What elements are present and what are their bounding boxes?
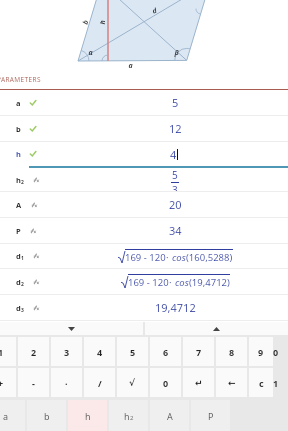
button[interactable]: Expand [145,322,288,335]
button[interactable]: ↵ [183,368,214,397]
staticText: c [259,377,264,389]
button[interactable]: P [0,218,288,244]
staticText: 3 [21,307,24,314]
staticText: (160,5288) [186,251,233,264]
staticText: b [44,410,50,422]
staticText: PARAMETERS [0,75,41,84]
button[interactable]: P [191,400,230,431]
other: Formula [33,279,39,285]
button[interactable]: 2 [18,337,49,366]
button[interactable]: 8 [216,337,247,366]
other: Valid [30,126,36,132]
staticText: · [169,276,175,289]
other: Formula [33,253,39,259]
staticText: P [16,226,21,236]
staticText: d [16,251,21,261]
staticText: 1 [21,255,24,262]
staticText: 6 [163,346,169,358]
other: Formula [33,177,39,183]
button[interactable]: c [249,368,273,397]
staticText: 7 [196,346,202,358]
staticText: cos [175,276,189,289]
button[interactable]: 3 [51,337,82,366]
staticText: 19,4712 [155,300,196,315]
button[interactable]: d [0,244,288,269]
button[interactable]: 0 [150,368,181,397]
button[interactable]: · [51,368,82,397]
button[interactable]: 7 [183,337,214,366]
button[interactable]: 5 [117,337,148,366]
button[interactable]: h [0,142,288,168]
button[interactable]: h [0,168,288,192]
staticText: 169 - 120 [125,251,166,264]
staticText: h [16,175,21,185]
staticText: 8 [229,346,235,358]
staticText: 2 [21,281,24,288]
other: Valid [30,100,36,106]
staticText: h [85,410,91,422]
staticText: √ [129,378,136,388]
staticText: h [16,149,21,159]
staticText: + [0,377,4,389]
other: Valid [30,151,36,157]
staticText: d [16,303,21,313]
staticText: a [3,410,9,422]
staticText: 4 [170,147,177,162]
button[interactable]: b [27,400,66,431]
staticText: cos [172,251,186,264]
button[interactable]: 9 [249,337,273,366]
staticText: 9 [258,346,264,358]
staticText: 12 [169,121,182,136]
button[interactable]: - [18,368,49,397]
staticText: - [32,377,35,389]
staticText: a [16,98,21,108]
staticText: 34 [169,223,182,238]
staticText: 20 [169,197,182,212]
staticText: P [208,410,214,422]
button[interactable]: + [0,368,16,397]
button[interactable]: A [150,400,189,431]
button[interactable]: d [0,269,288,295]
button[interactable]: a [0,90,288,116]
button[interactable]: 4 [84,337,115,366]
staticText: (19,4712) [189,276,230,289]
button[interactable]: h [68,400,107,431]
button[interactable]: b [0,116,288,142]
staticText: 3 [64,346,70,358]
staticText: 2 [31,346,37,358]
staticText: · [166,251,172,264]
staticText: ← [228,378,236,388]
staticText: A [16,200,22,210]
button[interactable]: Collapse [0,322,143,335]
button[interactable]: 1 [0,337,16,366]
button[interactable]: h [109,400,148,431]
button[interactable]: d [0,295,288,321]
button[interactable]: √ [117,368,148,397]
other: Formula [31,202,37,208]
button[interactable]: / [84,368,115,397]
staticText: 169 - 120 [128,276,169,289]
staticText: A [167,410,173,422]
other: Formula [30,228,36,234]
other: Formula [33,305,39,311]
staticText: 2 [130,414,134,422]
staticText: 3 [172,183,178,191]
button[interactable]: 6 [150,337,181,366]
staticText: b [16,124,21,134]
button[interactable]: ← [216,368,247,397]
staticText: ↵ [195,378,203,388]
staticText: 5 [172,168,178,182]
staticText: · [65,377,68,389]
staticText: 1 [0,346,4,358]
staticText: 2 [21,179,24,186]
button[interactable]: A [0,192,288,218]
staticText: 0 [163,377,169,389]
staticText: 5 [172,95,179,110]
button[interactable]: a [0,400,25,431]
staticText: h [124,410,130,422]
staticText: 4 [97,346,103,358]
staticText: d [16,277,21,287]
staticText: / [98,377,102,389]
staticText: 5 [130,346,136,358]
